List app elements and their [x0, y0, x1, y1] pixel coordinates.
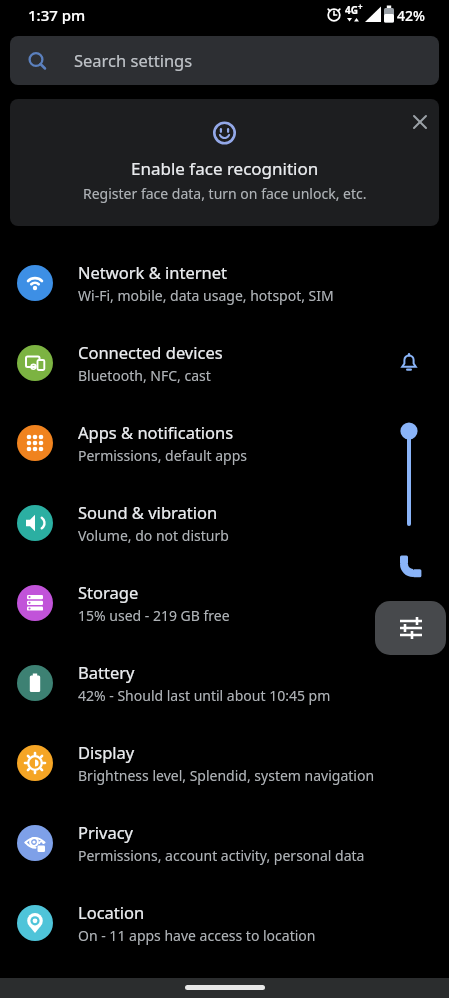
- button[interactable]: Connected devices: [0, 323, 449, 403]
- button[interactable]: Sound & vibration: [0, 483, 449, 563]
- staticText: 42% - Should last until about 10:45 pm: [78, 686, 331, 705]
- button[interactable]: Battery: [0, 643, 449, 723]
- staticText: Location: [78, 901, 145, 923]
- staticText: Volume, do not disturb: [78, 526, 229, 545]
- staticText: Brightness level, Splendid, system navig…: [78, 766, 375, 785]
- staticText: Enable face recognition: [131, 157, 319, 180]
- staticText: 42%: [397, 6, 425, 25]
- staticText: 15% used - 219 GB free: [78, 606, 230, 625]
- staticText: Wi-Fi, mobile, data usage, hotspot, SIM: [78, 286, 334, 305]
- staticText: +: [358, 1, 363, 12]
- staticText: Permissions, default apps: [78, 446, 248, 465]
- staticText: On - 11 apps have access to location: [78, 926, 316, 945]
- button[interactable]: [375, 601, 446, 655]
- staticText: Register face data, turn on face unlock,…: [83, 184, 367, 203]
- staticText: Apps & notifications: [78, 421, 234, 443]
- staticText: Search settings: [74, 49, 193, 71]
- button[interactable]: Location: [0, 883, 449, 963]
- staticText: Storage: [78, 581, 139, 603]
- button[interactable]: Network & internet: [0, 243, 449, 323]
- staticText: Network & internet: [78, 261, 228, 283]
- staticText: Battery: [78, 661, 135, 683]
- staticText: Connected devices: [78, 341, 223, 363]
- staticText: Privacy: [78, 821, 134, 843]
- button[interactable]: Display: [0, 723, 449, 803]
- staticText: 4G: [345, 3, 358, 17]
- staticText: Display: [78, 741, 135, 763]
- button[interactable]: Privacy: [0, 803, 449, 883]
- button[interactable]: [408, 110, 432, 134]
- staticText: Permissions, account activity, personal …: [78, 846, 365, 865]
- button[interactable]: [185, 985, 265, 990]
- staticText: Sound & vibration: [78, 501, 218, 523]
- staticText: Bluetooth, NFC, cast: [78, 366, 211, 385]
- button[interactable]: Search settings: [10, 36, 439, 85]
- button[interactable]: Apps & notifications: [0, 403, 449, 483]
- button[interactable]: Storage: [0, 563, 449, 643]
- staticText: 1:37 pm: [28, 5, 86, 25]
